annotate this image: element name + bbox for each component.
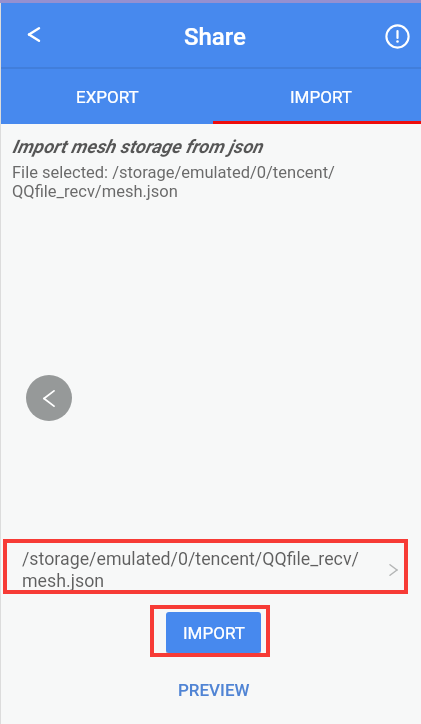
staticText: Share [184,23,246,51]
button[interactable]: PREVIEW [164,673,264,707]
staticText: File selected: /storage/emulated/0/tence… [12,163,335,201]
button[interactable]: /storage/emulated/0/tencent/QQfile_recv/… [0,544,421,596]
button[interactable]: EXPORT [0,68,210,124]
staticText: PREVIEW [178,680,250,700]
button[interactable]: IMPORT [210,68,421,124]
staticText: IMPORT [183,623,245,643]
staticText: /storage/emulated/0/tencent/QQfile_recv/… [22,548,390,592]
button[interactable]: IMPORT [166,612,261,653]
staticText: EXPORT [76,87,139,107]
button[interactable]: Back [14,14,54,54]
staticText: IMPORT [290,87,352,107]
button[interactable]: Previous [26,375,72,421]
button[interactable]: Info [377,16,417,56]
staticText: Import mesh storage from json [12,136,263,158]
